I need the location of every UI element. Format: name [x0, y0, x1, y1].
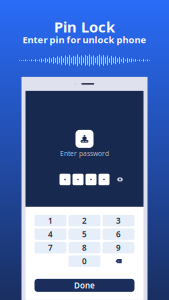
button[interactable]: Delete — [102, 255, 134, 267]
button[interactable]: 7 — [34, 242, 66, 253]
staticText: 6 — [116, 229, 121, 239]
button[interactable]: 9 — [102, 242, 134, 253]
button[interactable]: Show password — [114, 174, 125, 185]
staticText: Enter password — [60, 149, 109, 158]
button[interactable]: 0 — [68, 255, 100, 267]
button[interactable]: 8 — [68, 242, 100, 253]
button[interactable]: Done — [34, 279, 134, 292]
staticText: 9 — [116, 242, 121, 253]
staticText: 8 — [82, 242, 87, 253]
button[interactable]: 6 — [102, 228, 134, 240]
staticText: 2 — [82, 215, 87, 226]
button[interactable]: 2 — [68, 215, 100, 226]
staticText: 5 — [82, 229, 87, 239]
staticText: 0 — [82, 256, 87, 266]
staticText: 1 — [48, 215, 53, 226]
staticText: 3 — [116, 215, 121, 226]
button[interactable]: 4 — [34, 228, 66, 240]
staticText: Done — [74, 280, 95, 291]
button[interactable]: 5 — [68, 228, 100, 240]
button[interactable]: 1 — [34, 215, 66, 226]
staticText: Pin Lock — [54, 17, 115, 36]
button[interactable]: 3 — [102, 215, 134, 226]
staticText: Enter pin for unlock phone — [22, 33, 146, 46]
staticText: 7 — [48, 242, 53, 253]
staticText: 4 — [48, 229, 53, 239]
